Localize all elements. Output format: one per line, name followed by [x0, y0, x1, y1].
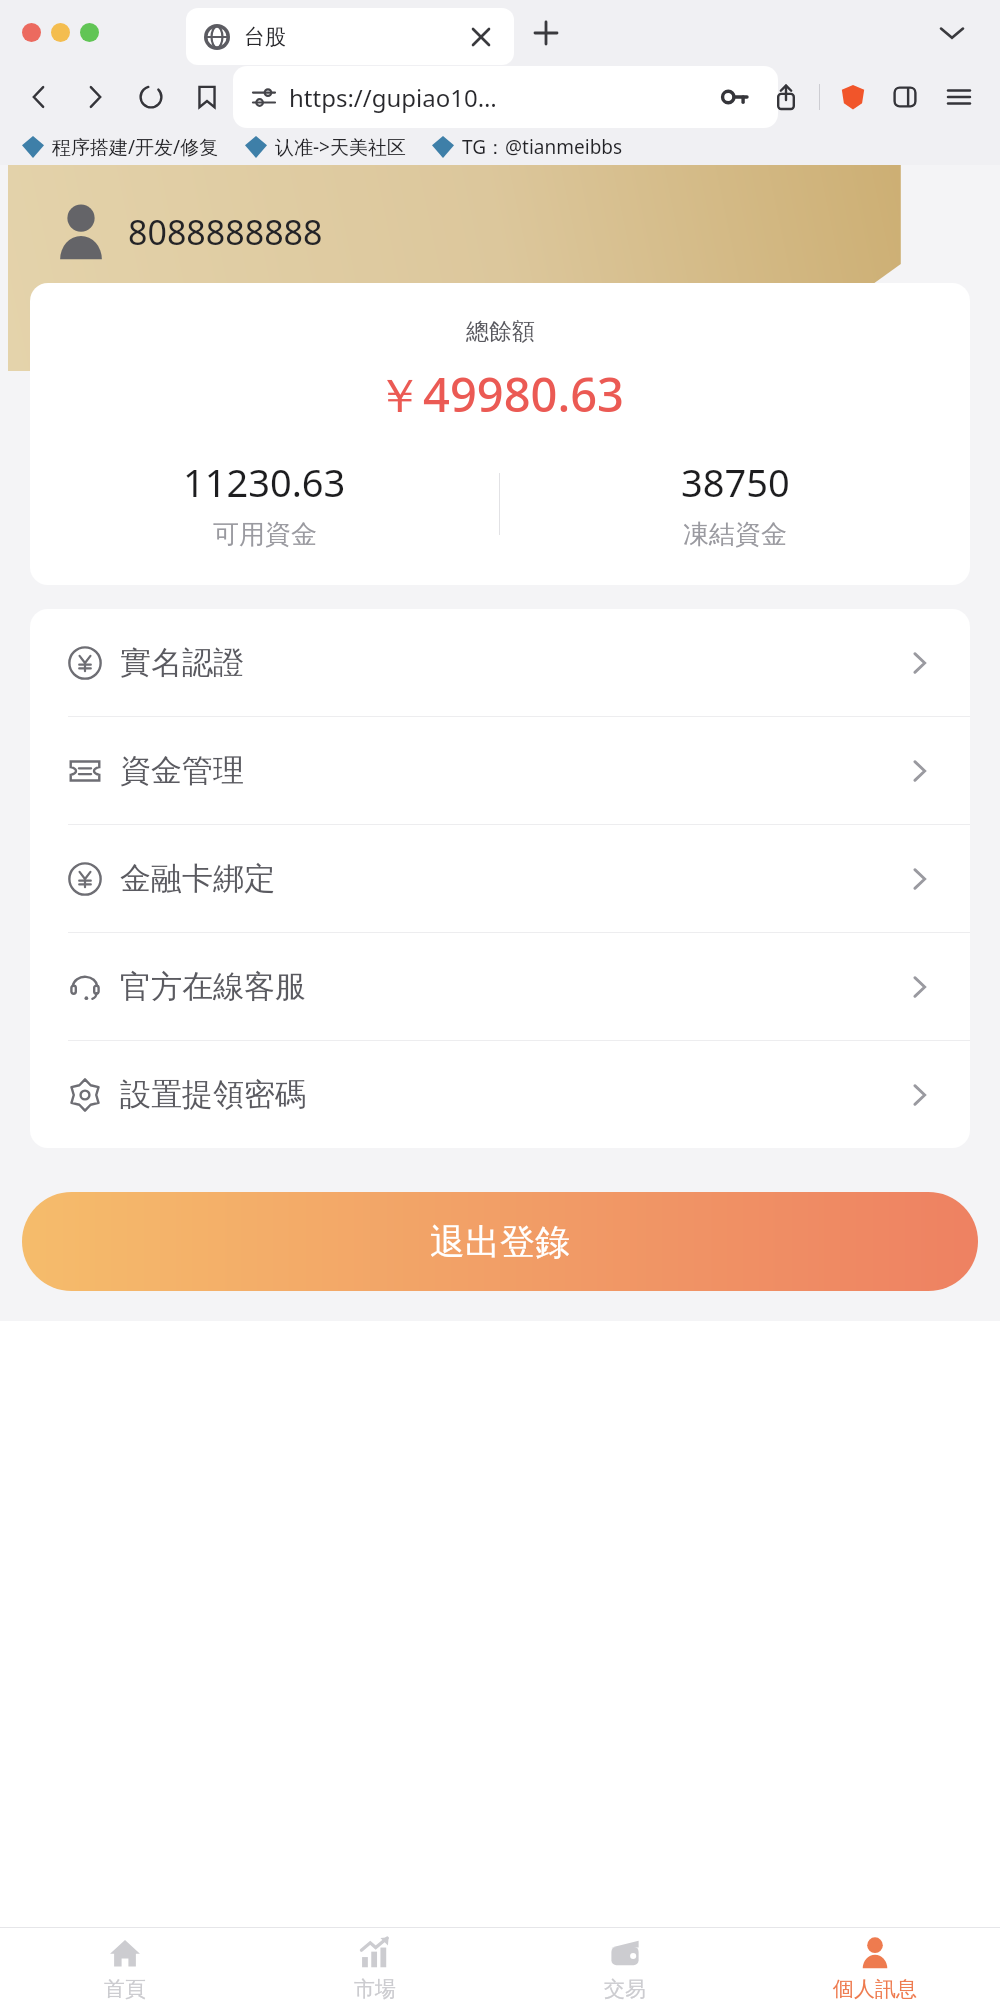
button[interactable]: 台股: [186, 8, 514, 65]
staticText: 11230.63: [183, 456, 346, 508]
staticText: 8088888888: [128, 209, 323, 255]
button[interactable]: 資金管理: [30, 717, 970, 824]
button[interactable]: Reload: [132, 78, 170, 116]
button[interactable]: 金融卡綁定: [30, 825, 970, 932]
button[interactable]: 市場: [250, 1928, 500, 2010]
button[interactable]: [22, 23, 41, 42]
button[interactable]: Share: [767, 78, 805, 116]
staticText: 认准->天美社区: [275, 134, 406, 160]
staticText: 退出登錄: [430, 1220, 570, 1264]
button[interactable]: TG：@tianmeibbs: [430, 134, 625, 160]
button[interactable]: [51, 23, 70, 42]
staticText: 金融卡綁定: [120, 859, 275, 898]
staticText: 官方在線客服: [120, 967, 306, 1006]
button[interactable]: 程序搭建/开发/修复: [20, 134, 221, 160]
staticText: TG：@tianmeibbs: [462, 134, 623, 160]
button[interactable]: New tab: [528, 15, 564, 51]
staticText: https://gupiao10…: [289, 81, 497, 114]
button[interactable]: 實名認證: [30, 609, 970, 716]
staticText: 可用資金: [213, 518, 317, 551]
button[interactable]: Menu: [940, 78, 978, 116]
button[interactable]: https://gupiao10…: [233, 66, 778, 128]
button[interactable]: Password: [715, 78, 753, 116]
button[interactable]: [80, 23, 99, 42]
button[interactable]: Back: [20, 78, 58, 116]
staticText: 個人訊息: [833, 1976, 917, 2002]
staticText: 實名認證: [120, 643, 244, 682]
button[interactable]: 8088888888: [52, 203, 1000, 261]
staticText: 總餘額: [466, 317, 535, 346]
button[interactable]: Tab list: [934, 15, 970, 51]
button[interactable]: 首頁: [0, 1928, 250, 2010]
staticText: 首頁: [104, 1976, 146, 2002]
button[interactable]: Brave: [834, 78, 872, 116]
staticText: 交易: [604, 1976, 646, 2002]
button[interactable]: Close tab: [466, 22, 496, 52]
button[interactable]: Forward: [76, 78, 114, 116]
button[interactable]: 官方在線客服: [30, 933, 970, 1040]
staticText: 台股: [244, 24, 286, 50]
button[interactable]: 設置提領密碼: [30, 1041, 970, 1148]
staticText: ￥49980.63: [376, 362, 624, 426]
button[interactable]: Wallet: [886, 78, 924, 116]
button[interactable]: 交易: [500, 1928, 750, 2010]
button[interactable]: 退出登錄: [22, 1192, 978, 1291]
staticText: 設置提領密碼: [120, 1075, 306, 1114]
staticText: 凍結資金: [683, 518, 787, 551]
staticText: 資金管理: [120, 751, 244, 790]
staticText: 市場: [354, 1976, 396, 2002]
button[interactable]: 认准->天美社区: [243, 134, 408, 160]
button[interactable]: Bookmark: [188, 78, 226, 116]
staticText: 程序搭建/开发/修复: [52, 134, 219, 160]
button[interactable]: 個人訊息: [750, 1928, 1000, 2010]
staticText: 38750: [681, 456, 790, 508]
